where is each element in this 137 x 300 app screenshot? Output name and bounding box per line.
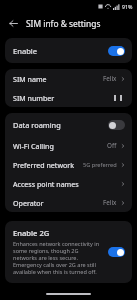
staticText: Enhances network connectivity in some re… bbox=[13, 240, 103, 275]
staticText: Wi-Fi Calling bbox=[13, 141, 107, 151]
button[interactable]: Wi-Fi Calling bbox=[5, 136, 132, 155]
staticText: Access point names bbox=[13, 179, 120, 189]
staticText: Operator bbox=[13, 198, 103, 208]
button[interactable]: Access point names bbox=[5, 174, 132, 193]
button[interactable]: Enable 2G bbox=[5, 221, 132, 283]
staticText: Enable 2G bbox=[13, 228, 50, 238]
staticText: Data roaming bbox=[13, 120, 108, 130]
staticText: Enable bbox=[13, 46, 108, 56]
button[interactable]: Preferred network type bbox=[5, 155, 132, 174]
staticText: Preferred network type bbox=[13, 160, 83, 170]
staticText: Felix bbox=[103, 74, 117, 83]
staticText: Off bbox=[107, 141, 117, 150]
button[interactable]: SIM name bbox=[5, 69, 132, 88]
button[interactable]: Operator bbox=[5, 193, 132, 212]
staticText: SIM info & settings bbox=[26, 18, 101, 29]
button[interactable]: Back bbox=[6, 16, 21, 31]
staticText: 5G preferred bbox=[83, 161, 117, 169]
staticText: SIM name bbox=[13, 74, 103, 84]
button[interactable]: Data roaming bbox=[5, 113, 132, 136]
button[interactable]: Enable bbox=[5, 38, 132, 63]
staticText: SIM number bbox=[13, 93, 114, 103]
button[interactable]: Toggle on bbox=[108, 46, 125, 56]
button[interactable]: Toggle on bbox=[108, 247, 125, 257]
staticText: Felix bbox=[103, 198, 117, 207]
staticText: 91% bbox=[122, 3, 133, 10]
button[interactable]: Toggle off bbox=[108, 120, 125, 130]
button[interactable]: SIM number bbox=[5, 88, 132, 107]
